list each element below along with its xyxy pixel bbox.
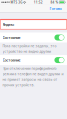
staticText: При отключении периферийного режима теле… [3,66,64,87]
staticText: Пока настройки не заданы, это устройство… [3,44,57,54]
staticText: 3G [18,0,22,4]
button[interactable]: Яндекс [0,19,67,29]
staticText: Состояние [3,58,21,62]
staticText: 11:52 [34,0,43,4]
staticText: Яндекс [3,22,15,27]
staticText: 84 % [50,0,58,4]
staticText: MTS [11,0,18,4]
staticText: Готово [49,6,61,11]
button[interactable]: Готово [47,4,67,12]
staticText: Состояние [3,35,21,40]
button[interactable]: Состояние [0,32,67,42]
button[interactable]: Состояние [0,55,67,65]
